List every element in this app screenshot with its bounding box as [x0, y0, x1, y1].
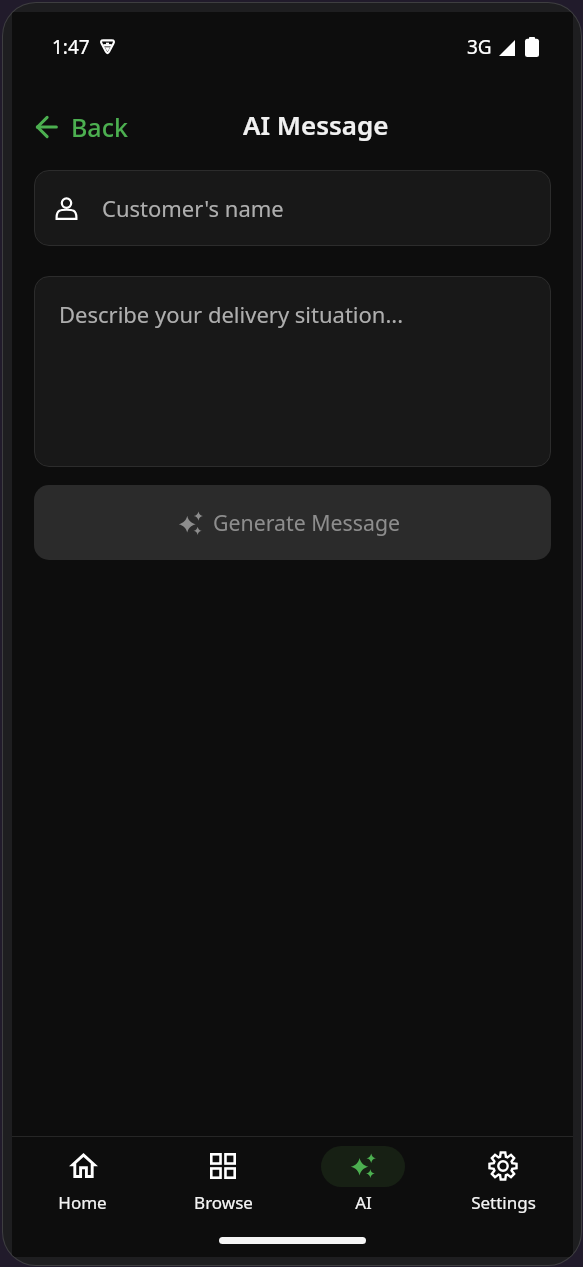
staticText: Customer's name [102, 193, 284, 223]
button[interactable]: Home [12, 1137, 153, 1214]
staticText: Settings [471, 1191, 536, 1214]
button[interactable]: Settings [433, 1137, 573, 1214]
staticText: 1:47 [52, 34, 90, 60]
other: Settings [489, 1152, 517, 1180]
staticText: Home [58, 1191, 107, 1214]
button[interactable]: Browse [153, 1137, 293, 1214]
staticText: Generate Message [213, 508, 401, 537]
button[interactable]: Describe your delivery situation... [34, 276, 551, 467]
other: Browse [210, 1153, 236, 1179]
staticText: Describe your delivery situation... [59, 299, 404, 329]
staticText: Back [71, 110, 128, 144]
button[interactable]: AI [293, 1137, 433, 1214]
staticText: AI [355, 1191, 372, 1214]
button[interactable]: Generate Message [34, 485, 551, 560]
other: AI [350, 1152, 377, 1179]
other: Home [69, 1153, 98, 1178]
button[interactable]: Back [30, 104, 134, 150]
staticText: 3G [467, 34, 492, 60]
button[interactable]: Customer's name [34, 170, 551, 246]
staticText: AI Message [243, 107, 389, 142]
staticText: Browse [194, 1191, 253, 1214]
